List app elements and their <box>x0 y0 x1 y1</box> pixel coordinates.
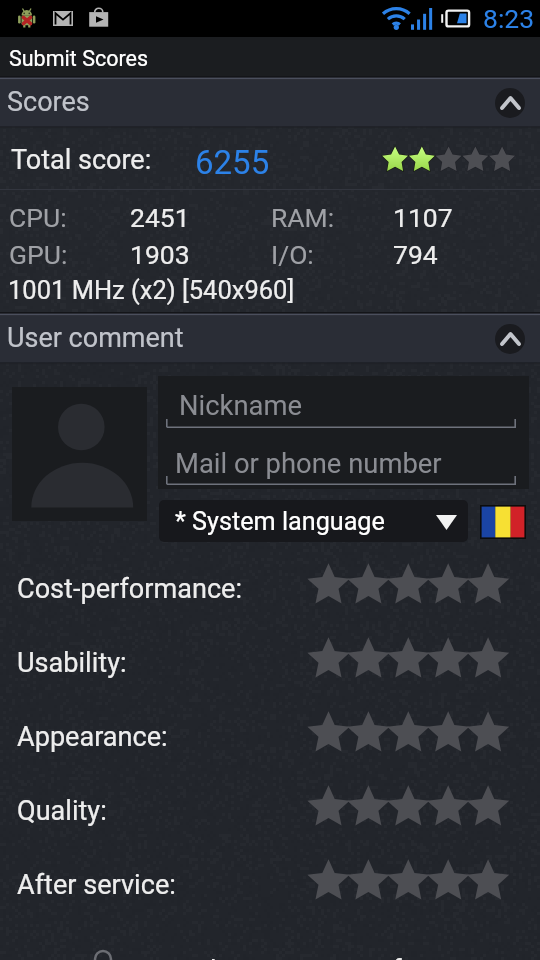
staticText: User comment <box>7 322 184 354</box>
staticText: For evaluating your performance <box>124 953 506 960</box>
button[interactable] <box>166 419 516 428</box>
button[interactable] <box>88 940 540 960</box>
button[interactable]: Select country <box>480 505 526 539</box>
button[interactable] <box>0 312 540 365</box>
button[interactable]: Collapse section <box>495 324 525 354</box>
staticText: 794 <box>393 239 438 270</box>
staticText: Mail or phone number <box>175 448 442 480</box>
staticText: 1001 MHz (x2) [540x960] <box>8 275 295 305</box>
staticText: Submit Scores <box>9 46 149 71</box>
staticText: Appearance: <box>17 721 168 753</box>
staticText: * System language <box>175 507 385 537</box>
staticText: CPU: <box>9 202 67 233</box>
staticText: 1107 <box>393 202 453 233</box>
staticText: Nickname <box>179 390 302 422</box>
staticText: Total score: <box>11 144 152 176</box>
staticText: GPU: <box>9 239 68 270</box>
button[interactable] <box>0 76 540 129</box>
button[interactable] <box>159 500 468 542</box>
staticText: Quality: <box>17 795 107 827</box>
staticText: Scores <box>7 86 90 118</box>
staticText: Usability: <box>17 647 127 679</box>
staticText: 2451 <box>130 202 190 233</box>
staticText: I/O: <box>271 239 314 270</box>
button[interactable]: Collapse section <box>495 88 525 118</box>
staticText: 1903 <box>130 239 190 270</box>
staticText: RAM: <box>271 202 335 233</box>
staticText: Cost-performance: <box>17 573 243 605</box>
staticText: 8:23 <box>483 3 535 34</box>
staticText: After service: <box>17 869 176 901</box>
button[interactable] <box>166 476 516 485</box>
staticText: 6255 <box>195 143 270 182</box>
button[interactable] <box>0 37 540 77</box>
